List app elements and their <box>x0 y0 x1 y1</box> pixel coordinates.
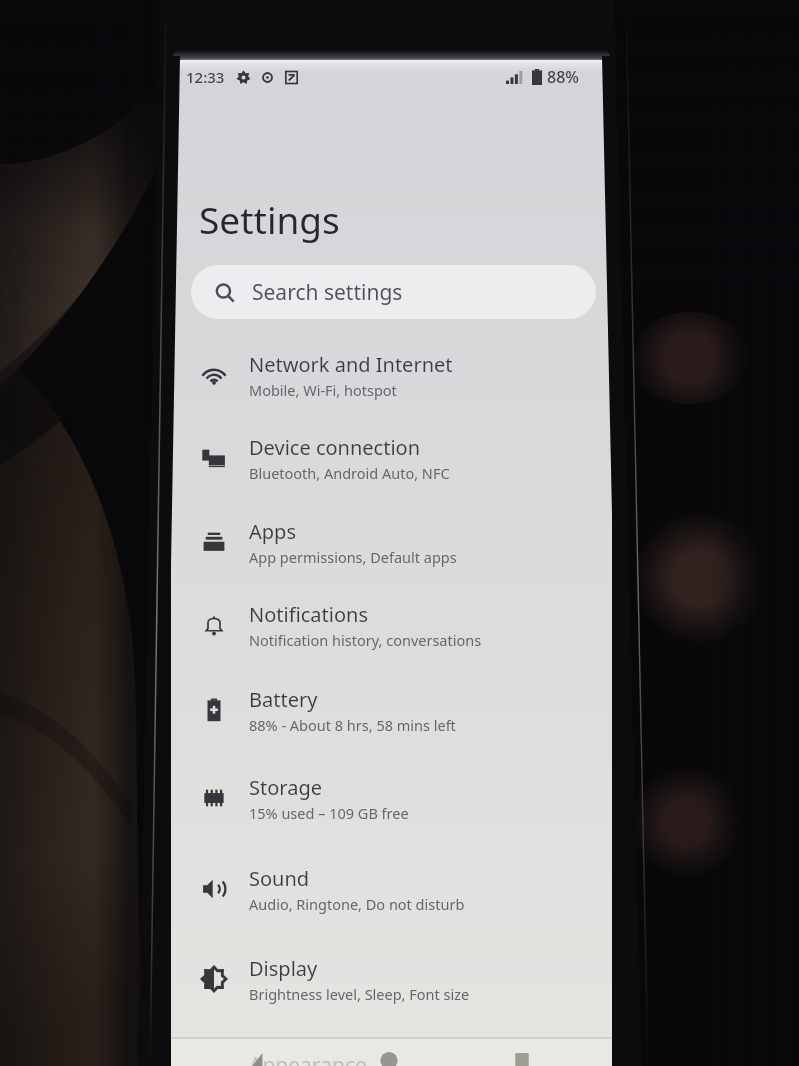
button[interactable]: Notifications <box>171 585 612 665</box>
staticText: Battery <box>249 686 318 713</box>
staticText: 88% <box>547 66 579 88</box>
staticText: Notifications <box>249 601 368 628</box>
staticText: Storage <box>249 774 322 801</box>
button[interactable]: Storage <box>171 758 612 838</box>
button[interactable]: Home <box>374 1053 404 1066</box>
button[interactable]: Network and Internet <box>171 335 612 415</box>
staticText: Mobile, Wi-Fi, hotspot <box>249 380 397 400</box>
button[interactable]: Device connection <box>171 418 612 498</box>
staticText: Notification history, conversations <box>249 630 482 650</box>
staticText: 15% used – 109 GB free <box>249 803 409 823</box>
staticText: Sound <box>249 865 310 892</box>
button[interactable]: Apps <box>171 502 612 582</box>
button[interactable]: Sound <box>171 849 612 929</box>
staticText: 88% - About 8 hrs, 58 mins left <box>249 715 456 735</box>
staticText: Brightness level, Sleep, Font size <box>249 984 470 1004</box>
button[interactable]: Battery <box>171 670 612 750</box>
staticText: Network and Internet <box>249 351 453 378</box>
staticText: Settings <box>199 194 340 244</box>
staticText: Device connection <box>249 434 421 461</box>
staticText: Search settings <box>252 278 403 307</box>
button[interactable]: Back <box>241 1053 271 1066</box>
staticText: Bluetooth, Android Auto, NFC <box>249 463 450 483</box>
button[interactable]: Recents <box>507 1053 537 1066</box>
staticText: Apps <box>249 518 296 545</box>
staticText: Display <box>249 955 318 982</box>
button[interactable]: Display <box>171 939 612 1019</box>
staticText: App permissions, Default apps <box>249 547 457 567</box>
button[interactable]: Search settings <box>191 265 596 319</box>
staticText: Audio, Ringtone, Do not disturb <box>249 894 465 914</box>
staticText: Appearance <box>249 1051 367 1066</box>
staticText: 12:33 <box>186 67 225 87</box>
